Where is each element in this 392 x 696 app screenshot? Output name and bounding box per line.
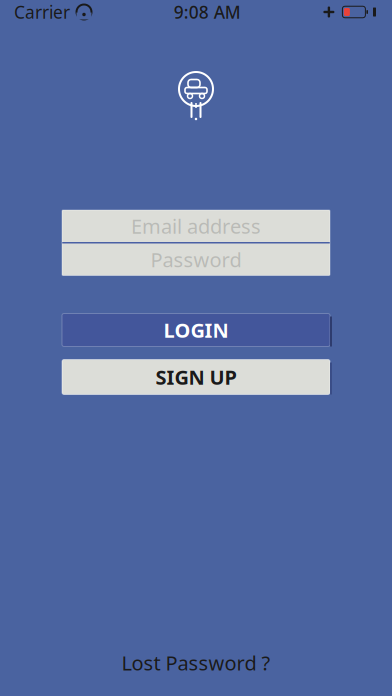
staticText: Carrier <box>14 0 70 23</box>
staticText: LOGIN <box>163 317 228 343</box>
staticText: SIGN UP <box>155 364 236 390</box>
staticText: 9:08 AM <box>174 0 241 23</box>
staticText: Email address <box>131 213 261 239</box>
staticText: Password <box>150 246 241 273</box>
staticText: Lost Password ? <box>121 649 270 676</box>
button[interactable]: Email address <box>62 210 330 242</box>
button[interactable]: LOGIN <box>62 313 330 346</box>
button[interactable]: SIGN UP <box>62 359 330 394</box>
button[interactable]: Password <box>62 243 330 275</box>
button[interactable]: Lost Password ? <box>101 643 290 682</box>
